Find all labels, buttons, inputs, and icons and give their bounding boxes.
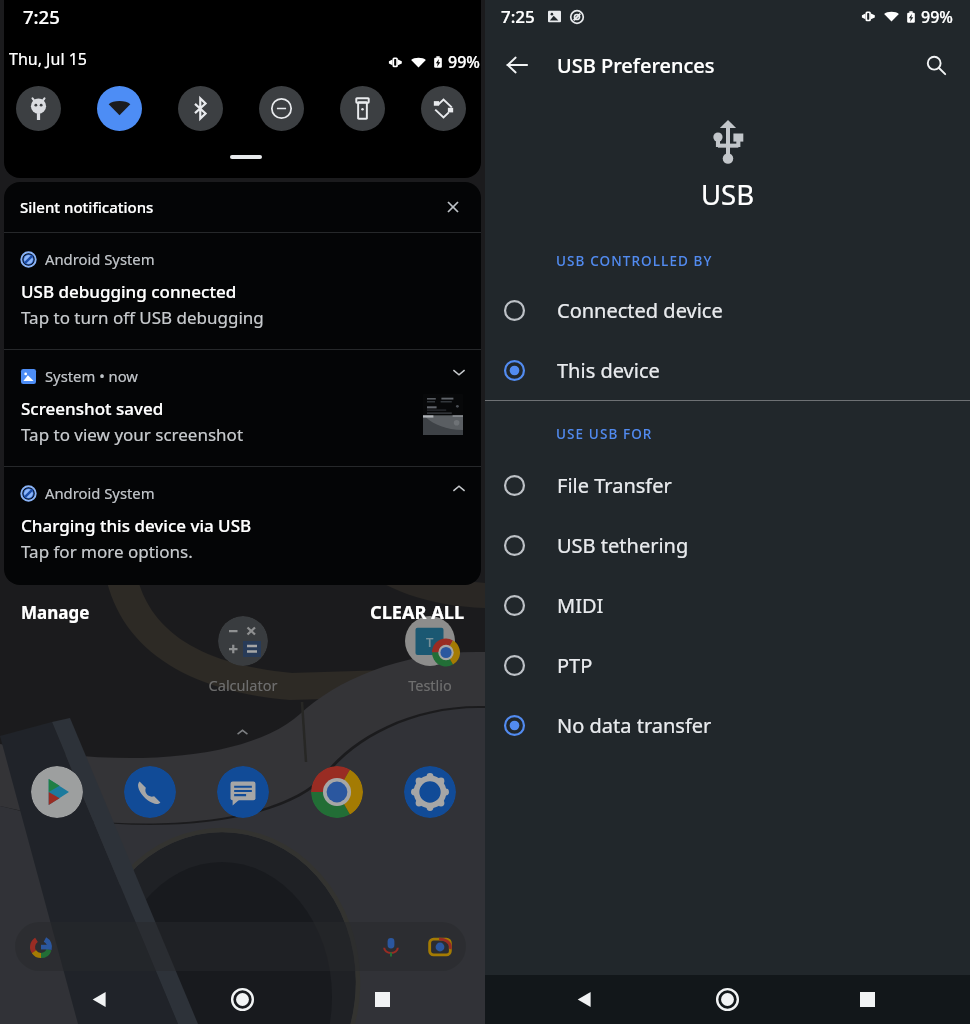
button[interactable]: Connected device xyxy=(485,280,970,340)
staticText: USB tethering xyxy=(557,532,689,559)
staticText: USB CONTROLLED BY xyxy=(556,252,713,270)
staticText: 7:25 xyxy=(23,4,60,29)
staticText: MIDI xyxy=(557,592,604,619)
button[interactable]: Home xyxy=(695,975,759,1024)
button[interactable]: Recents xyxy=(350,975,414,1024)
staticText: This device xyxy=(557,357,660,384)
button[interactable]: App xyxy=(217,766,269,818)
staticText: File Transfer xyxy=(557,472,672,499)
staticText: Tap to turn off USB debugging xyxy=(21,306,264,329)
staticText: Testlio xyxy=(380,675,480,695)
button[interactable]: File Transfer xyxy=(485,455,970,515)
button[interactable]: USB tethering xyxy=(485,515,970,575)
button[interactable]: Quick setting xyxy=(97,86,142,131)
button[interactable]: App xyxy=(311,766,363,818)
staticText: No data transfer xyxy=(557,712,712,739)
button[interactable]: Calculator xyxy=(218,616,268,666)
button[interactable]: Testlio xyxy=(405,616,455,666)
button[interactable]: Back xyxy=(68,975,132,1024)
button[interactable]: CLEAR ALL xyxy=(370,600,465,625)
button[interactable]: Quick setting xyxy=(340,86,385,131)
staticText: USB debugging connected xyxy=(21,280,237,303)
button[interactable]: Home xyxy=(210,975,274,1024)
staticText: Connected device xyxy=(557,297,723,324)
staticText: Silent notifications xyxy=(20,197,154,217)
staticText: Calculator xyxy=(193,675,293,695)
button[interactable]: App xyxy=(31,766,83,818)
button[interactable]: Android System xyxy=(4,233,481,349)
button[interactable]: MIDI xyxy=(485,575,970,635)
button[interactable]: App xyxy=(124,766,176,818)
staticText: 99% xyxy=(448,51,480,73)
staticText: USB xyxy=(701,176,755,213)
staticText: T xyxy=(426,633,434,651)
staticText: USE USB FOR xyxy=(556,425,653,443)
button[interactable]: Quick setting xyxy=(16,86,61,131)
button[interactable]: Quick setting xyxy=(178,86,223,131)
button[interactable]: Back xyxy=(553,975,617,1024)
staticText: Tap for more options. xyxy=(21,540,193,563)
staticText: Android System xyxy=(45,249,155,269)
staticText: Thu, Jul 15 xyxy=(9,48,87,70)
staticText: 7:25 xyxy=(501,5,535,28)
staticText: Screenshot saved xyxy=(21,397,164,420)
staticText: CLEAR ALL xyxy=(370,600,465,625)
button[interactable]: Android System xyxy=(4,467,481,583)
staticText: 99% xyxy=(921,6,953,28)
button[interactable]: No data transfer xyxy=(485,695,970,755)
staticText: Charging this device via USB xyxy=(21,514,252,537)
button[interactable]: Quick setting xyxy=(421,86,466,131)
staticText: Manage xyxy=(21,601,90,624)
button[interactable] xyxy=(15,922,466,971)
button[interactable]: Silent notifications xyxy=(4,182,481,232)
button[interactable]: Search xyxy=(914,43,958,87)
button[interactable]: PTP xyxy=(485,635,970,695)
staticText: System • now xyxy=(45,366,138,386)
staticText: PTP xyxy=(557,652,593,679)
button[interactable]: System • now xyxy=(4,350,481,466)
button[interactable]: Back xyxy=(495,43,539,87)
staticText: USB Preferences xyxy=(557,52,715,79)
button[interactable]: App xyxy=(404,766,456,818)
button[interactable]: Quick setting xyxy=(259,86,304,131)
button[interactable]: This device xyxy=(485,340,970,400)
button[interactable]: Manage xyxy=(21,601,90,624)
button[interactable]: Dismiss xyxy=(440,194,466,220)
button[interactable]: Recents xyxy=(835,975,899,1024)
staticText: Android System xyxy=(45,483,155,503)
staticText: Tap to view your screenshot xyxy=(21,423,244,446)
